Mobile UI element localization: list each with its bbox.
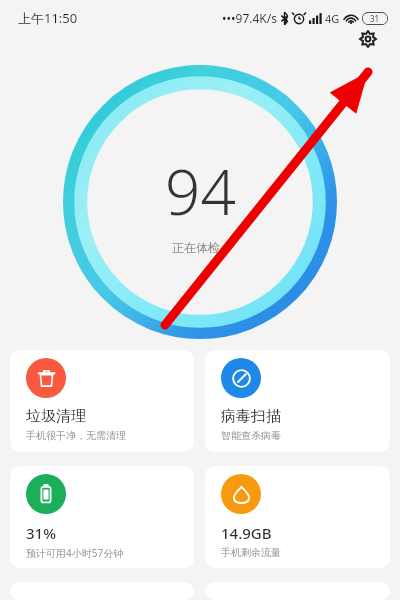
staticText: 垃圾清理 — [26, 407, 86, 426]
button[interactable]: 病毒扫描 — [205, 350, 390, 452]
staticText: 手机很干净，无需清理 — [26, 429, 126, 442]
button[interactable]: Settings — [350, 30, 386, 48]
button[interactable]: 垃圾清理 — [10, 350, 194, 452]
staticText: 14.9GB — [221, 523, 272, 543]
staticText: 上午11:50 — [18, 9, 78, 27]
staticText: 31 — [370, 13, 380, 24]
staticText: 手机剩余流量 — [221, 546, 281, 559]
staticText: 正在体检... — [172, 239, 230, 255]
staticText: 智能查杀病毒 — [221, 429, 281, 442]
button[interactable]: 31% — [10, 466, 194, 568]
staticText: 31% — [26, 523, 56, 543]
staticText: •••97.4K/s — [222, 10, 277, 26]
staticText: 预计可用4小时57分钟 — [26, 546, 124, 560]
button[interactable]: 14.9GB — [205, 466, 390, 568]
staticText: 4G — [325, 11, 340, 26]
staticText: 病毒扫描 — [221, 407, 281, 426]
staticText: 94 — [165, 149, 236, 233]
